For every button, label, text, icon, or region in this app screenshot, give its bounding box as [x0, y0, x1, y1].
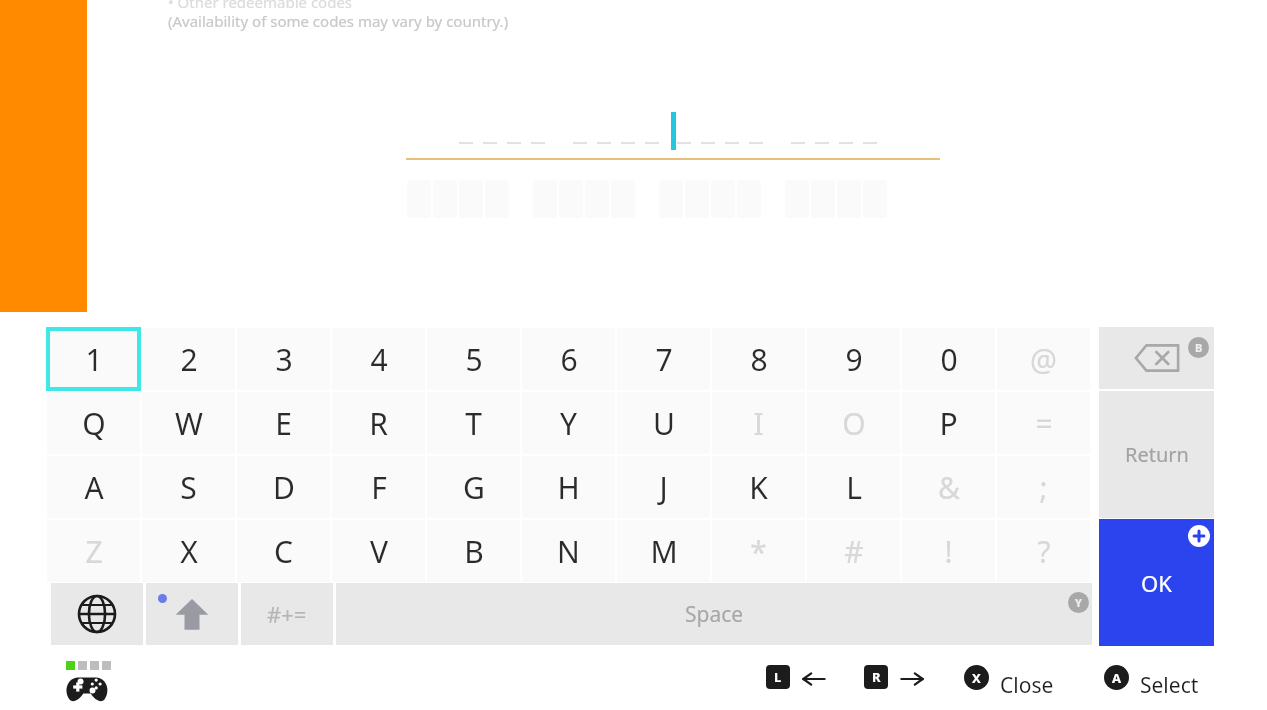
staticText: V [370, 531, 388, 572]
button[interactable]: 8 [712, 328, 805, 390]
button[interactable]: J [617, 456, 710, 518]
staticText: O [842, 403, 866, 444]
button[interactable]: F [332, 456, 425, 518]
button[interactable]: ? [997, 520, 1090, 582]
button[interactable]: W [142, 392, 235, 454]
button[interactable]: V [332, 520, 425, 582]
staticText: P [939, 403, 958, 444]
staticText: 4 [370, 339, 388, 380]
staticText: M [650, 531, 678, 572]
button[interactable]: Controller [64, 672, 110, 702]
button[interactable]: 4 [332, 328, 425, 390]
button[interactable]: C [237, 520, 330, 582]
staticText: G [463, 467, 485, 508]
button[interactable]: Space [336, 583, 1092, 645]
button[interactable]: E [237, 392, 330, 454]
button[interactable]: R [864, 665, 888, 689]
button[interactable]: A [47, 456, 140, 518]
button[interactable]: 1 [47, 328, 140, 390]
button[interactable]: O [807, 392, 900, 454]
button[interactable]: Select [1140, 671, 1199, 700]
button[interactable]: 7 [617, 328, 710, 390]
button[interactable]: B [427, 520, 520, 582]
button[interactable]: Y [522, 392, 615, 454]
button[interactable]: U [617, 392, 710, 454]
button[interactable]: # [807, 520, 900, 582]
staticText: W [175, 403, 203, 444]
button[interactable]: L [766, 665, 790, 689]
button[interactable]: 5 [427, 328, 520, 390]
staticText: # [844, 531, 864, 572]
button[interactable]: Backspace [1099, 327, 1214, 389]
button[interactable]: Change language [51, 583, 143, 645]
staticText: OK [1141, 568, 1172, 598]
button[interactable]: 3 [237, 328, 330, 390]
button[interactable]: L [807, 456, 900, 518]
staticText: = [1035, 403, 1053, 444]
staticText: 9 [845, 339, 863, 380]
staticText: L [846, 467, 862, 508]
staticText: R [369, 403, 388, 444]
button[interactable]: Previous [800, 665, 828, 693]
button[interactable]: N [522, 520, 615, 582]
button[interactable]: D [237, 456, 330, 518]
staticText: N [557, 531, 580, 572]
staticText: S [180, 467, 197, 508]
staticText: X [180, 531, 198, 572]
staticText: Space [685, 600, 744, 629]
staticText: H [557, 467, 580, 508]
button[interactable]: A [1104, 665, 1129, 690]
button[interactable]: Return [1099, 391, 1214, 518]
staticText: 0 [940, 339, 958, 380]
button[interactable]: #+= [241, 583, 333, 645]
button[interactable]: Close [1000, 671, 1054, 700]
button[interactable]: S [142, 456, 235, 518]
button[interactable]: & [902, 456, 995, 518]
staticText: A [1112, 669, 1121, 687]
button[interactable]: K [712, 456, 805, 518]
staticText: D [273, 467, 295, 508]
button[interactable]: Z [47, 520, 140, 582]
button[interactable]: T [427, 392, 520, 454]
staticText: T [465, 403, 482, 444]
button[interactable]: 2 [142, 328, 235, 390]
staticText: F [371, 467, 387, 508]
button[interactable]: X [964, 665, 989, 690]
staticText: @ [1030, 339, 1057, 380]
staticText: I [753, 403, 764, 444]
button[interactable]: H [522, 456, 615, 518]
button[interactable]: I [712, 392, 805, 454]
button[interactable]: G [427, 456, 520, 518]
staticText: Y [1075, 595, 1082, 610]
staticText: B [1195, 340, 1203, 355]
button[interactable]: M [617, 520, 710, 582]
button[interactable]: @ [997, 328, 1090, 390]
staticText: • Other redeemable codes [168, 0, 353, 12]
button[interactable]: Next [898, 665, 926, 693]
staticText: L [774, 668, 782, 686]
button[interactable]: 6 [522, 328, 615, 390]
button[interactable]: 9 [807, 328, 900, 390]
staticText: C [274, 531, 293, 572]
staticText: 6 [560, 339, 578, 380]
button[interactable]: Shift [146, 583, 238, 645]
button[interactable]: X [142, 520, 235, 582]
button[interactable]: * [712, 520, 805, 582]
button[interactable]: = [997, 392, 1090, 454]
button[interactable]: R [332, 392, 425, 454]
staticText: J [659, 467, 668, 508]
staticText: & [938, 467, 960, 508]
button[interactable]: P [902, 392, 995, 454]
staticText: 8 [750, 339, 768, 380]
button[interactable]: ! [902, 520, 995, 582]
button[interactable]: Q [47, 392, 140, 454]
staticText: X [972, 669, 981, 687]
button[interactable]: OK [1099, 519, 1214, 646]
button[interactable]: 0 [902, 328, 995, 390]
staticText: (Availability of some codes may vary by … [168, 11, 509, 31]
staticText: * [750, 531, 767, 572]
staticText: 5 [465, 339, 483, 380]
staticText: Return [1125, 441, 1189, 468]
staticText: E [275, 403, 292, 444]
